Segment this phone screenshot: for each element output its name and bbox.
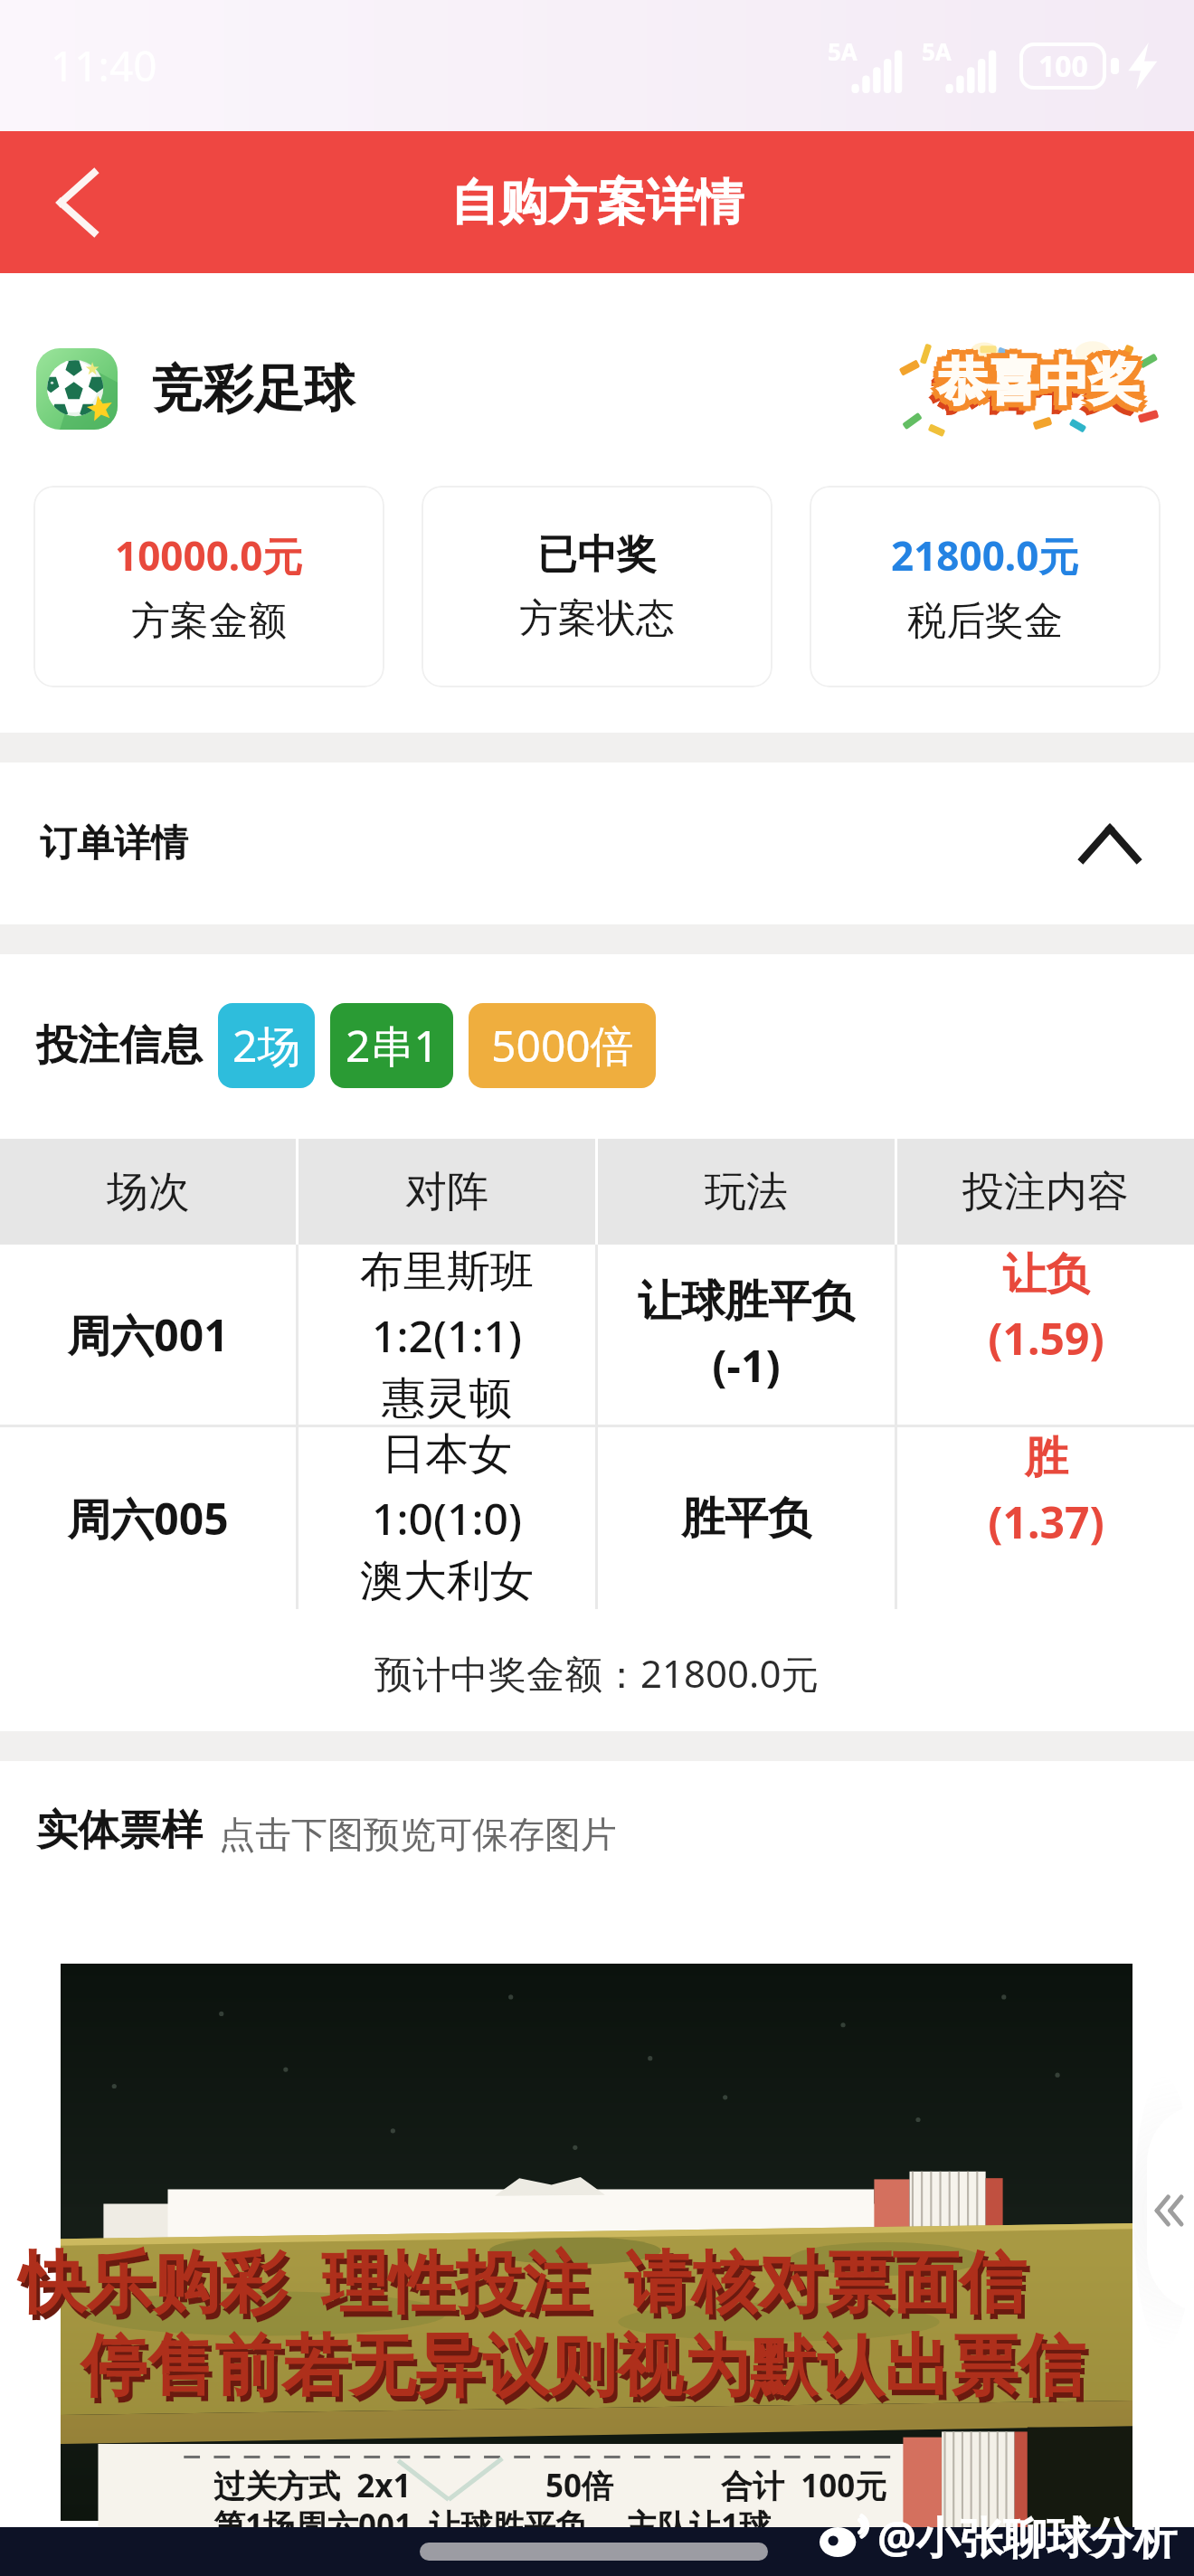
staticText: 恭喜中奖	[937, 353, 1140, 417]
button[interactable]: 实体票样照片	[61, 1964, 1132, 2521]
staticText: 快乐购彩 理性投注 请核对票面信	[23, 2240, 1029, 2331]
staticText: 方案状态	[519, 594, 675, 643]
staticText: 已中奖	[537, 530, 657, 580]
staticText: 5A	[828, 35, 858, 67]
staticText: 恭喜中奖	[943, 350, 1145, 414]
staticText: 2场	[232, 1016, 301, 1075]
staticText: 自购方案详情	[450, 172, 744, 233]
staticText: 恭喜中奖	[942, 346, 1144, 410]
staticText: 胜 (1.37)	[988, 1431, 1104, 1551]
staticText: 恭喜中奖	[932, 350, 1134, 414]
staticText: 恭喜中奖	[937, 347, 1140, 412]
staticText: 实体票样	[36, 1804, 203, 1857]
staticText: 税后奖金	[907, 597, 1063, 646]
button[interactable]: 收起订单详情	[1069, 803, 1151, 885]
staticText: 周六005	[67, 1489, 229, 1548]
staticText: 21800.0元	[891, 528, 1079, 582]
button[interactable]: 周六001	[0, 1245, 1194, 1425]
staticText: 10000.0元	[115, 528, 303, 582]
staticText: 恭喜中奖	[942, 355, 1144, 419]
staticText: 订单详情	[40, 820, 188, 867]
staticText: 恭喜中奖	[937, 345, 1140, 409]
staticText: 快乐购彩 理性投注 请核对票面信	[19, 2234, 1026, 2325]
staticText: 2串1	[346, 1016, 439, 1075]
staticText: 让负 (1.59)	[988, 1247, 1104, 1368]
staticText: 竞彩足球	[152, 357, 355, 421]
staticText: 100	[1038, 46, 1088, 86]
staticText: 投注信息	[36, 1019, 203, 1072]
staticText: 恭喜中奖	[937, 350, 1140, 414]
staticText: 投注内容	[962, 1166, 1129, 1218]
button[interactable]: 已中奖	[422, 486, 772, 687]
button[interactable]: 10000.0元	[33, 486, 384, 687]
staticText: 第1场周六001 让球胜平负	[213, 2504, 588, 2547]
staticText: 停售前若无异议则视为默认出票信	[81, 2325, 1085, 2409]
staticText: 停售前若无异议则视为默认出票信	[84, 2330, 1088, 2414]
staticText: 恭喜中奖	[932, 357, 1134, 421]
staticText: 恭喜中奖	[933, 356, 1135, 421]
staticText: 11:40	[51, 37, 157, 94]
staticText: 恭喜中奖	[931, 358, 1133, 422]
staticText: 恭喜中奖	[933, 355, 1135, 419]
staticText: 5000倍	[491, 1016, 634, 1075]
button[interactable]: 21800.0元	[810, 486, 1161, 687]
staticText: 恭喜中奖	[940, 350, 1142, 414]
staticText: 方案金额	[131, 597, 287, 646]
button[interactable]: 周六005	[0, 1427, 1194, 1609]
staticText: 让球胜平负 (-1)	[638, 1274, 855, 1395]
staticText: 预计中奖金额：21800.0元	[374, 1647, 820, 1699]
staticText: 点击下图预览可保存图片	[219, 1812, 617, 1857]
staticText: 恭喜中奖	[934, 350, 1137, 414]
staticText: 周六001	[67, 1305, 229, 1365]
staticText: 恭喜中奖	[933, 346, 1135, 410]
button[interactable]: Collapse panel	[1147, 2104, 1194, 2312]
button[interactable]: 竞彩足球	[36, 348, 118, 430]
staticText: 50倍	[545, 2464, 614, 2507]
button[interactable]: 2串1	[330, 1003, 453, 1088]
button[interactable]: 5000倍	[469, 1003, 656, 1088]
staticText: 合计 100元	[721, 2464, 887, 2507]
staticText: 场次	[107, 1166, 190, 1218]
staticText: 玩法	[705, 1166, 788, 1218]
staticText: 5A	[922, 35, 952, 67]
button[interactable]: 订单详情	[0, 762, 1194, 924]
button[interactable]: Back	[0, 131, 154, 273]
staticText: 胜平负	[681, 1492, 811, 1546]
staticText: 过关方式 2x1	[213, 2464, 412, 2507]
staticText: 布里斯班 1:2(1:1) 惠灵顿	[360, 1245, 534, 1425]
staticText: @小张聊球分析	[877, 2507, 1178, 2567]
staticText: 恭喜中奖	[937, 355, 1140, 420]
staticText: 对阵	[405, 1166, 488, 1218]
staticText: 主队让1球	[626, 2504, 772, 2547]
staticText: 恭喜中奖	[930, 359, 1132, 423]
button[interactable]: 2场	[218, 1003, 315, 1088]
staticText: 日本女 1:0(1:0) 澳大利女	[360, 1427, 534, 1609]
